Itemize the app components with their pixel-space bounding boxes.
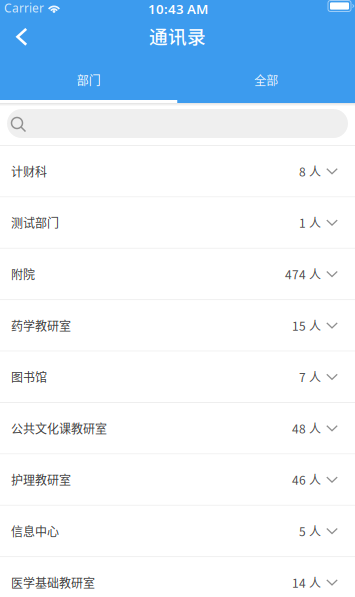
staticText: 8 人 (299, 162, 321, 180)
staticText: 46 人 (292, 471, 321, 488)
staticText: 48 人 (292, 419, 321, 437)
staticText: 14 人 (292, 574, 321, 591)
button[interactable]: 信息中心 (0, 506, 355, 557)
staticText: 医学基础教研室 (11, 574, 95, 591)
button[interactable]: 计财科 (0, 146, 355, 197)
staticText: 药学教研室 (11, 317, 71, 334)
staticText: 474 人 (285, 265, 321, 283)
button[interactable]: 附院 (0, 249, 355, 300)
staticText: 计财科 (11, 162, 47, 180)
staticText: 公共文化课教研室 (11, 419, 107, 437)
staticText: 15 人 (292, 317, 321, 334)
staticText: 护理教研室 (11, 471, 71, 488)
staticText: Carrier (4, 0, 44, 16)
button[interactable]: 护理教研室 (0, 454, 355, 506)
staticText: 部门 (77, 71, 101, 89)
staticText: 测试部门 (11, 214, 59, 231)
button[interactable]: Back (0, 12, 41, 71)
button[interactable]: 公共文化课教研室 (0, 403, 355, 454)
button[interactable]: 测试部门 (0, 197, 355, 249)
staticText: 通讯录 (149, 22, 206, 49)
staticText: 信息中心 (11, 522, 59, 540)
staticText: 全部 (254, 71, 278, 89)
staticText: 图书馆 (11, 368, 47, 385)
button[interactable]: 药学教研室 (0, 300, 355, 352)
button[interactable]: 全部 (177, 64, 355, 103)
staticText: 1 人 (299, 214, 321, 231)
staticText: 附院 (11, 265, 35, 283)
staticText: 10:43 AM (148, 0, 208, 18)
staticText: 7 人 (299, 368, 321, 385)
button[interactable]: 图书馆 (0, 352, 355, 403)
button[interactable]: 医学基础教研室 (0, 557, 355, 597)
button[interactable]: 部门 (0, 64, 177, 103)
staticText: 5 人 (299, 522, 321, 540)
